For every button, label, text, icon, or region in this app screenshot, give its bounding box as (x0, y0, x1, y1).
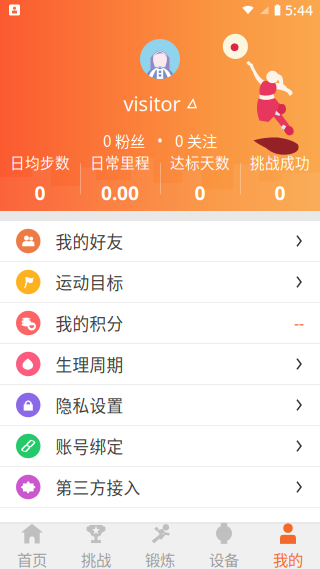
button[interactable]: 设备 (192, 524, 256, 569)
button[interactable]: 首页 (0, 524, 64, 569)
staticText: 挑战成功 (250, 151, 310, 173)
staticText: 0 (274, 180, 285, 206)
button[interactable]: 我的积分 (0, 303, 320, 344)
button[interactable]: 第三方接入 (0, 467, 320, 508)
staticText: 我的 (273, 548, 303, 569)
staticText: -- (294, 312, 304, 334)
staticText: 账号绑定 (55, 434, 123, 458)
staticText: 隐私设置 (55, 393, 123, 417)
staticText: 第三方接入 (55, 475, 140, 499)
button[interactable]: 我的好友 (0, 221, 320, 262)
button[interactable]: 隐私设置 (0, 385, 320, 426)
staticText: 挑战 (81, 548, 111, 569)
button[interactable]: 我的 (256, 524, 320, 569)
staticText: 达标天数 (170, 151, 230, 173)
button[interactable]: 锻炼 (128, 524, 192, 569)
staticText: 我的积分 (55, 311, 123, 335)
staticText: visitor (123, 90, 180, 117)
staticText: 运动目标 (55, 270, 123, 294)
button[interactable]: 挑战 (64, 524, 128, 569)
staticText: 设备 (209, 548, 239, 569)
staticText: 0 (34, 180, 45, 206)
staticText: 首页 (17, 548, 47, 569)
button[interactable]: 账号绑定 (0, 426, 320, 467)
staticText: 生理周期 (55, 352, 123, 376)
staticText: 0.00 (101, 180, 139, 206)
staticText: 我的好友 (55, 229, 123, 253)
staticText: 0 (194, 180, 205, 206)
staticText: 锻炼 (145, 548, 175, 569)
button[interactable]: 运动目标 (0, 262, 320, 303)
staticText: 日均步数 (10, 151, 70, 173)
staticText: 日常里程 (90, 151, 150, 173)
staticText: • (157, 129, 163, 151)
button[interactable]: 生理周期 (0, 344, 320, 385)
staticText: 5:44 (285, 0, 313, 20)
staticText: 0 粉丝 (103, 129, 145, 151)
staticText: 0 关注 (175, 129, 217, 151)
